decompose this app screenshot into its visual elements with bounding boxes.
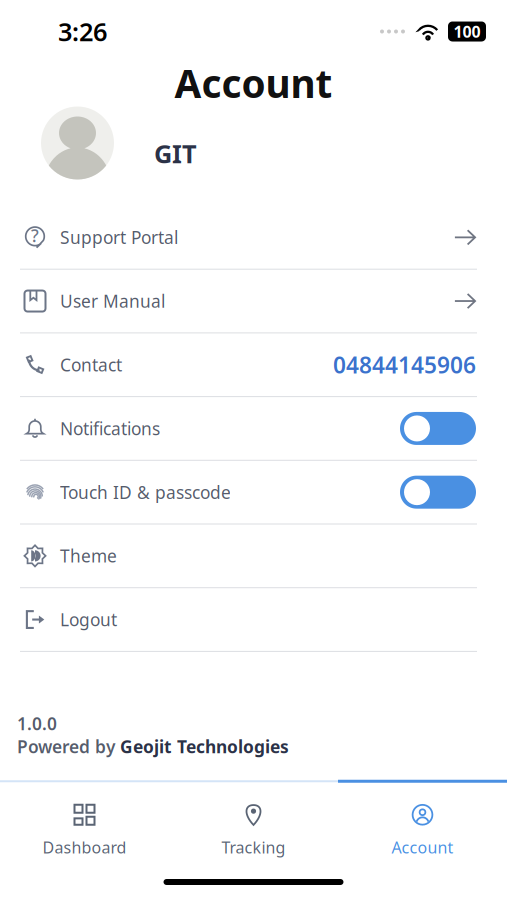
button[interactable]: Logout <box>0 588 507 651</box>
staticText: Notifications <box>60 417 160 440</box>
button[interactable]: Account <box>338 783 507 864</box>
staticText: Touch ID & passcode <box>60 481 231 504</box>
button[interactable]: Theme <box>0 524 507 587</box>
button[interactable]: Tracking <box>169 783 338 864</box>
button[interactable]: Dashboard <box>0 783 169 864</box>
staticText: 1.0.0 <box>17 712 57 735</box>
staticText: Contact <box>60 353 122 376</box>
staticText: 100 <box>453 21 480 42</box>
button[interactable]: Touch ID & passcode <box>0 461 507 523</box>
staticText: GIT <box>154 137 197 170</box>
staticText: Support Portal <box>60 226 178 249</box>
staticText: Dashboard <box>42 837 126 858</box>
button[interactable]: Notifications <box>0 397 507 460</box>
staticText: User Manual <box>60 289 165 312</box>
staticText: 3:26 <box>58 15 107 48</box>
button[interactable]: User Manual <box>0 270 507 332</box>
button[interactable]: Contact <box>0 333 507 396</box>
staticText: Powered by <box>17 735 120 758</box>
staticText: Account <box>391 837 453 858</box>
staticText: ? <box>31 224 39 247</box>
staticText: Tracking <box>221 837 285 858</box>
staticText: Logout <box>60 608 117 631</box>
staticText: 04844145906 <box>333 350 476 380</box>
staticText: Account <box>174 57 332 109</box>
staticText: Theme <box>60 544 117 567</box>
staticText: Geojit Technologies <box>120 735 289 758</box>
button[interactable]: ? <box>0 206 507 269</box>
